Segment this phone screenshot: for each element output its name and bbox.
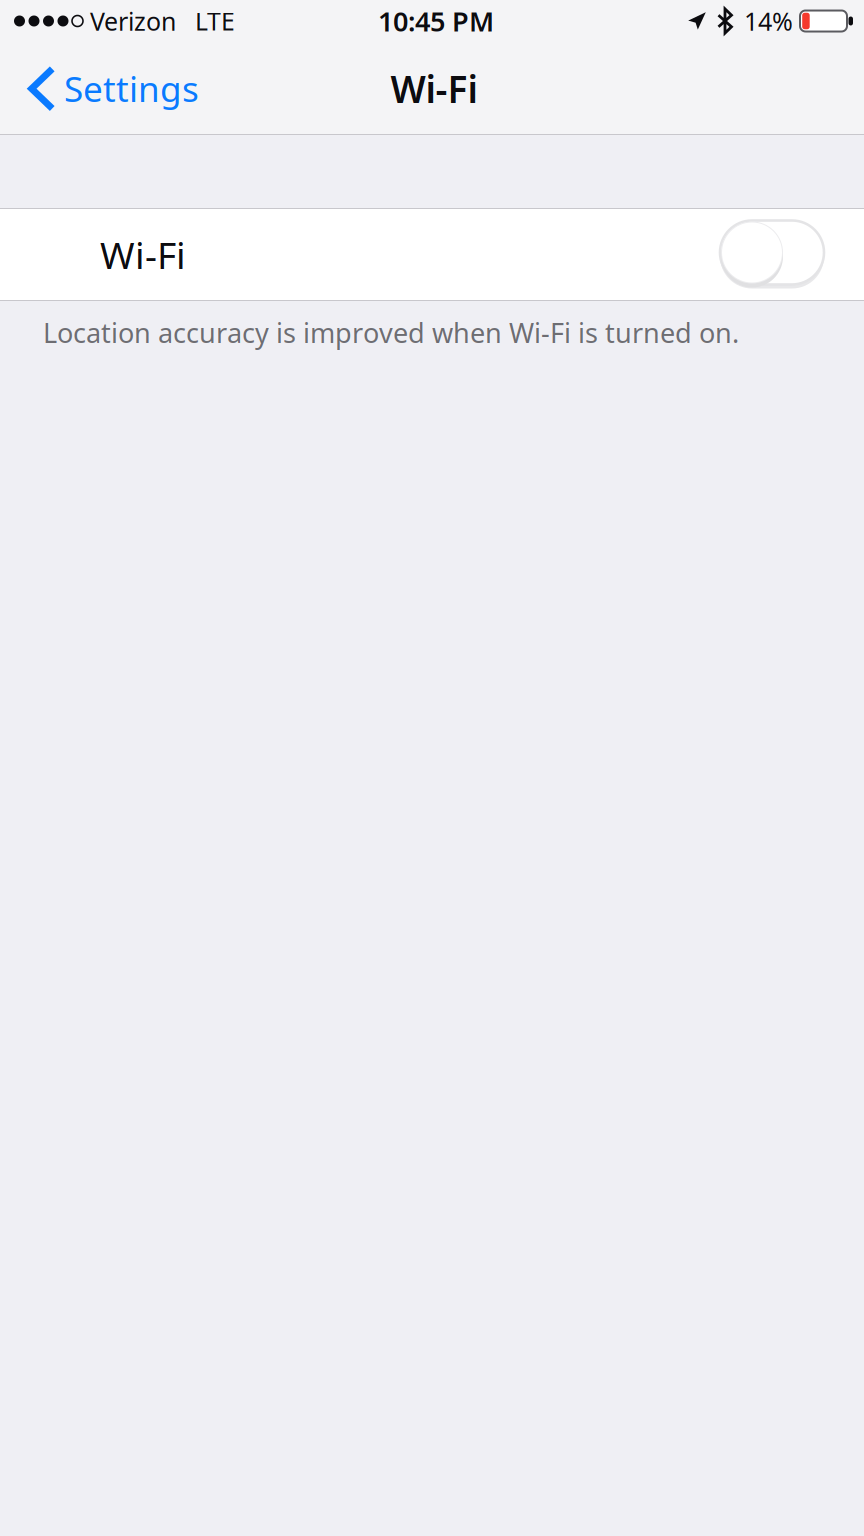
staticText: 10:45 PM xyxy=(378,3,494,39)
staticText: 14% xyxy=(744,4,793,38)
staticText: Settings xyxy=(64,65,199,112)
staticText: Wi-Fi xyxy=(390,63,477,114)
button[interactable]: Wi-Fi, off xyxy=(720,220,824,289)
button[interactable]: Settings xyxy=(0,42,213,135)
staticText: LTE xyxy=(195,4,235,38)
staticText: Location accuracy is improved when Wi-Fi… xyxy=(43,314,739,351)
staticText: Verizon xyxy=(90,4,176,38)
button[interactable]: Wi-Fi xyxy=(0,208,864,301)
staticText: Wi-Fi xyxy=(100,229,186,280)
